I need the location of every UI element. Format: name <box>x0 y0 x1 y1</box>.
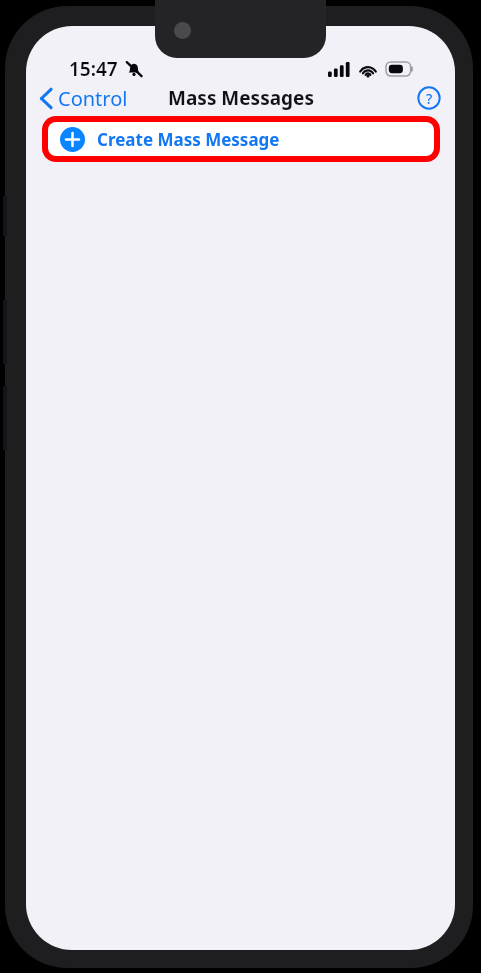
staticText: ? <box>426 89 433 108</box>
button[interactable]: Create Mass Message <box>48 122 434 156</box>
staticText: Create Mass Message <box>97 128 280 151</box>
button[interactable]: Control <box>34 81 134 116</box>
staticText: 15:47 <box>69 56 118 82</box>
staticText: Control <box>58 85 128 112</box>
button[interactable]: Help <box>414 83 444 113</box>
staticText: Mass Messages <box>168 85 314 111</box>
